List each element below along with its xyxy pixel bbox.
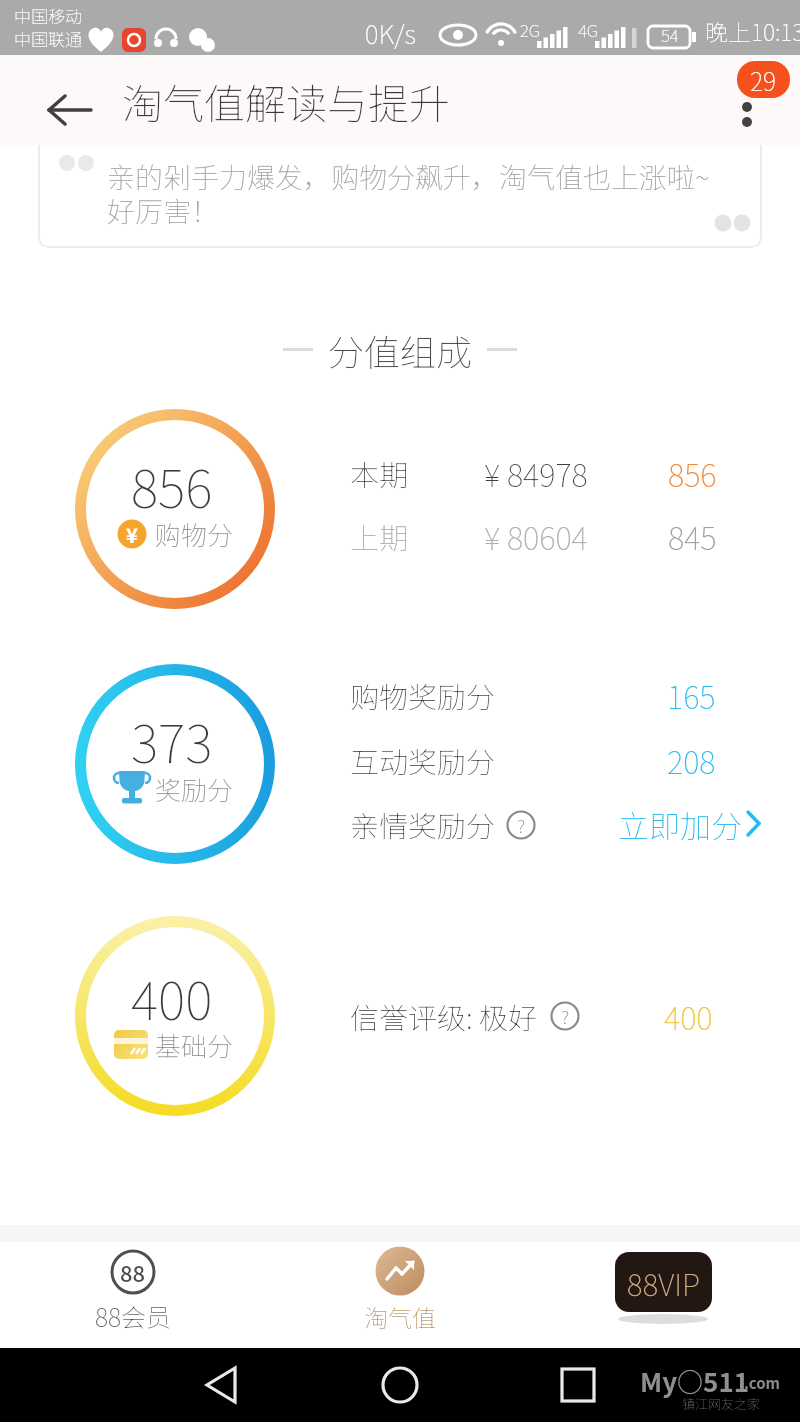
staticText: 88会员: [95, 1298, 172, 1334]
staticText: 互动奖励分: [350, 739, 496, 781]
staticText: 淘气值: [364, 1299, 436, 1334]
button[interactable]: [30, 85, 100, 135]
staticText: ¥ 84978: [484, 451, 588, 496]
button[interactable]: [358, 1358, 442, 1412]
staticText: 400: [664, 994, 713, 1039]
staticText: 29: [750, 62, 777, 98]
staticText: 亲的剁手力爆发，购物分飙升，淘气值也上涨啦~: [107, 156, 710, 194]
button[interactable]: ?: [506, 810, 536, 840]
staticText: ?: [561, 1002, 570, 1030]
staticText: ¥ 80604: [484, 514, 588, 559]
button[interactable]: 29: [737, 61, 790, 98]
staticText: 购物分: [155, 515, 234, 553]
staticText: 845: [668, 514, 717, 559]
button[interactable]: [536, 1358, 620, 1412]
staticText: ¥: [126, 520, 138, 549]
staticText: 好厉害！: [107, 190, 220, 228]
staticText: 上期: [350, 515, 409, 557]
staticText: 856: [131, 448, 213, 508]
staticText: 中国联通: [14, 26, 82, 50]
staticText: 亲情奖励分: [350, 803, 496, 845]
staticText: 晚上10:13: [705, 14, 800, 44]
button[interactable]: 88: [63, 1242, 203, 1348]
staticText: 208: [667, 738, 716, 783]
staticText: 镇江网友之家: [682, 1394, 761, 1412]
staticText: ?: [517, 811, 526, 839]
staticText: 中国移动: [14, 3, 82, 27]
staticText: .com: [744, 1372, 781, 1394]
staticText: 88: [120, 1256, 146, 1288]
staticText: 856: [668, 451, 717, 496]
button[interactable]: 淘气值: [330, 1242, 470, 1348]
button[interactable]: 立即加分: [610, 799, 760, 849]
staticText: 400: [131, 960, 213, 1020]
button[interactable]: [180, 1358, 264, 1412]
staticText: 0K/s: [365, 14, 417, 44]
staticText: 淘气值解读与提升: [122, 71, 450, 130]
staticText: 基础分: [155, 1026, 234, 1064]
button[interactable]: ?: [550, 1001, 580, 1031]
staticText: 购物奖励分: [350, 674, 496, 716]
button[interactable]: 88VIP: [615, 1252, 712, 1312]
staticText: 本期: [350, 452, 409, 494]
staticText: 88VIP: [627, 1261, 700, 1304]
staticText: 54: [661, 22, 679, 46]
button[interactable]: [727, 97, 767, 142]
staticText: 分值组成: [328, 324, 473, 376]
staticText: 奖励分: [155, 770, 234, 808]
staticText: 4G: [578, 17, 599, 42]
staticText: 373: [131, 703, 213, 763]
staticText: 165: [667, 673, 716, 718]
staticText: 2G: [520, 17, 541, 42]
staticText: 信誉评级: 极好: [350, 995, 538, 1037]
staticText: My○511: [640, 1362, 750, 1394]
staticText: 立即加分: [618, 802, 742, 847]
button[interactable]: 亲的剁手力爆发，购物分飙升，淘气值也上涨啦~: [38, 130, 762, 248]
